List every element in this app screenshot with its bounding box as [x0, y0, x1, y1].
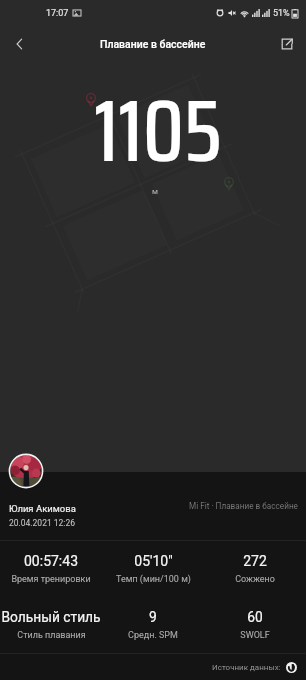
button[interactable]: 9 [102, 597, 204, 653]
staticText: Вольный стиль [1, 609, 101, 625]
button[interactable]: Share [268, 26, 306, 62]
staticText: 20.04.2021 12:26 [9, 518, 75, 528]
staticText: Источник данных: [212, 663, 281, 672]
staticText: 1105 [94, 63, 223, 198]
button[interactable]: Data source app [286, 662, 297, 673]
button[interactable]: 05'10" [102, 541, 204, 597]
button[interactable]: 00:57:43 [0, 541, 102, 597]
staticText: 05'10" [134, 553, 173, 569]
staticText: Сожжено [235, 574, 275, 585]
staticText: 60 [247, 609, 263, 625]
staticText: м [152, 187, 158, 196]
staticText: Темп (мин/100 м) [116, 574, 191, 585]
staticText: Плавание в бассейне [100, 38, 206, 50]
button[interactable]: Вольный стиль [0, 597, 102, 653]
staticText: Время тренировки [11, 574, 91, 585]
staticText: 51% [273, 8, 290, 19]
button[interactable]: 60 [204, 597, 306, 653]
button[interactable]: Profile photo [9, 454, 43, 488]
staticText: SWOLF [240, 630, 270, 641]
staticText: 17:07 [46, 8, 69, 19]
staticText: Mi Fit · Плавание в бассейне [189, 501, 298, 511]
button[interactable]: Back [0, 26, 38, 62]
staticText: 272 [243, 553, 267, 569]
staticText: 00:57:43 [24, 553, 78, 569]
staticText: 9 [149, 609, 157, 625]
staticText: Юлия Акимова [9, 503, 76, 514]
staticText: Стиль плавания [17, 630, 86, 641]
staticText: Средн. SPM [128, 630, 178, 641]
button[interactable]: 272 [204, 541, 306, 597]
